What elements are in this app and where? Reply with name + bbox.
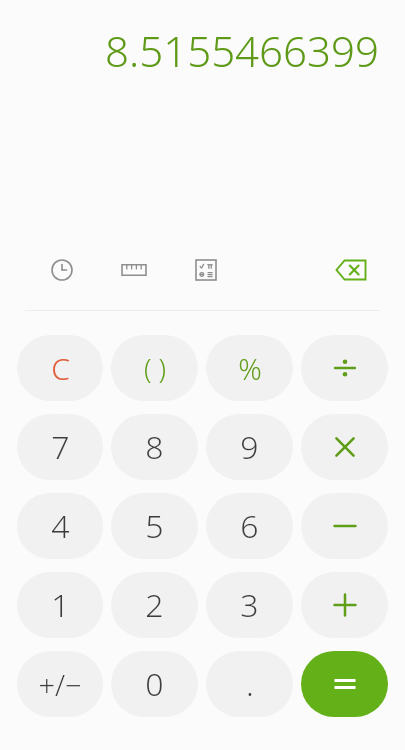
staticText: 7 — [51, 425, 70, 469]
staticText: 5 — [145, 504, 164, 548]
staticText: 8 — [145, 425, 164, 469]
button[interactable]: C — [17, 335, 103, 401]
button[interactable]: Backspace — [329, 248, 373, 292]
button[interactable]: Unit converter — [112, 248, 156, 292]
button[interactable]: . — [206, 651, 293, 717]
button[interactable]: Multiply — [301, 414, 388, 480]
button[interactable]: Scientific calculator — [184, 248, 228, 292]
staticText: 9 — [240, 425, 259, 469]
staticText: 2 — [145, 583, 164, 627]
button[interactable]: Plus — [301, 572, 388, 638]
button[interactable]: 2 — [111, 572, 198, 638]
button[interactable]: 6 — [206, 493, 293, 559]
button[interactable]: 8 — [111, 414, 198, 480]
button[interactable]: 7 — [17, 414, 103, 480]
staticText: +/− — [38, 665, 82, 704]
button[interactable]: 3 — [206, 572, 293, 638]
staticText: C — [51, 348, 70, 389]
button[interactable]: +/− — [17, 651, 103, 717]
staticText: % — [238, 349, 262, 388]
staticText: 6 — [240, 504, 259, 548]
staticText: 1 — [51, 583, 70, 627]
staticText: ( ) — [144, 350, 166, 387]
button[interactable]: 4 — [17, 493, 103, 559]
staticText: 4 — [51, 504, 70, 548]
staticText: 8.5155466399 — [20, 22, 379, 79]
button[interactable]: History — [40, 248, 84, 292]
staticText: . — [246, 662, 254, 706]
button[interactable]: 0 — [111, 651, 198, 717]
button[interactable]: Minus — [301, 493, 388, 559]
button[interactable]: 1 — [17, 572, 103, 638]
button[interactable]: 9 — [206, 414, 293, 480]
button[interactable]: ( ) — [111, 335, 198, 401]
button[interactable]: Equals — [301, 651, 388, 717]
staticText: 3 — [240, 583, 259, 627]
staticText: 0 — [145, 662, 164, 706]
button[interactable]: 5 — [111, 493, 198, 559]
button[interactable]: % — [206, 335, 293, 401]
button[interactable]: Divide — [301, 335, 388, 401]
